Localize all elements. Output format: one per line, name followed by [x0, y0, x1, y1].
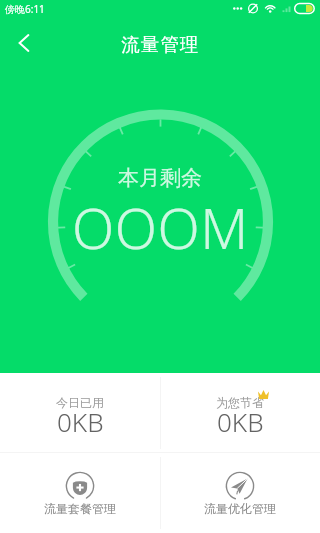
staticText: 今日已用: [56, 395, 104, 410]
staticText: 流量管理: [121, 33, 200, 56]
staticText: 傍晚6:11: [5, 2, 45, 16]
button[interactable]: 流量套餐管理: [0, 453, 160, 533]
button[interactable]: Back: [0, 19, 48, 67]
button[interactable]: 流量优化管理: [160, 453, 320, 533]
staticText: OOOM: [72, 190, 249, 265]
staticText: 为您节省: [216, 395, 264, 410]
staticText: 流量套餐管理: [44, 501, 116, 516]
staticText: 0KB: [57, 404, 104, 439]
staticText: 0KB: [217, 404, 264, 439]
button[interactable]: 今日已用: [0, 373, 160, 452]
staticText: 本月剩余: [118, 165, 202, 191]
staticText: 流量优化管理: [204, 501, 276, 516]
button[interactable]: 为您节省: [160, 373, 320, 452]
